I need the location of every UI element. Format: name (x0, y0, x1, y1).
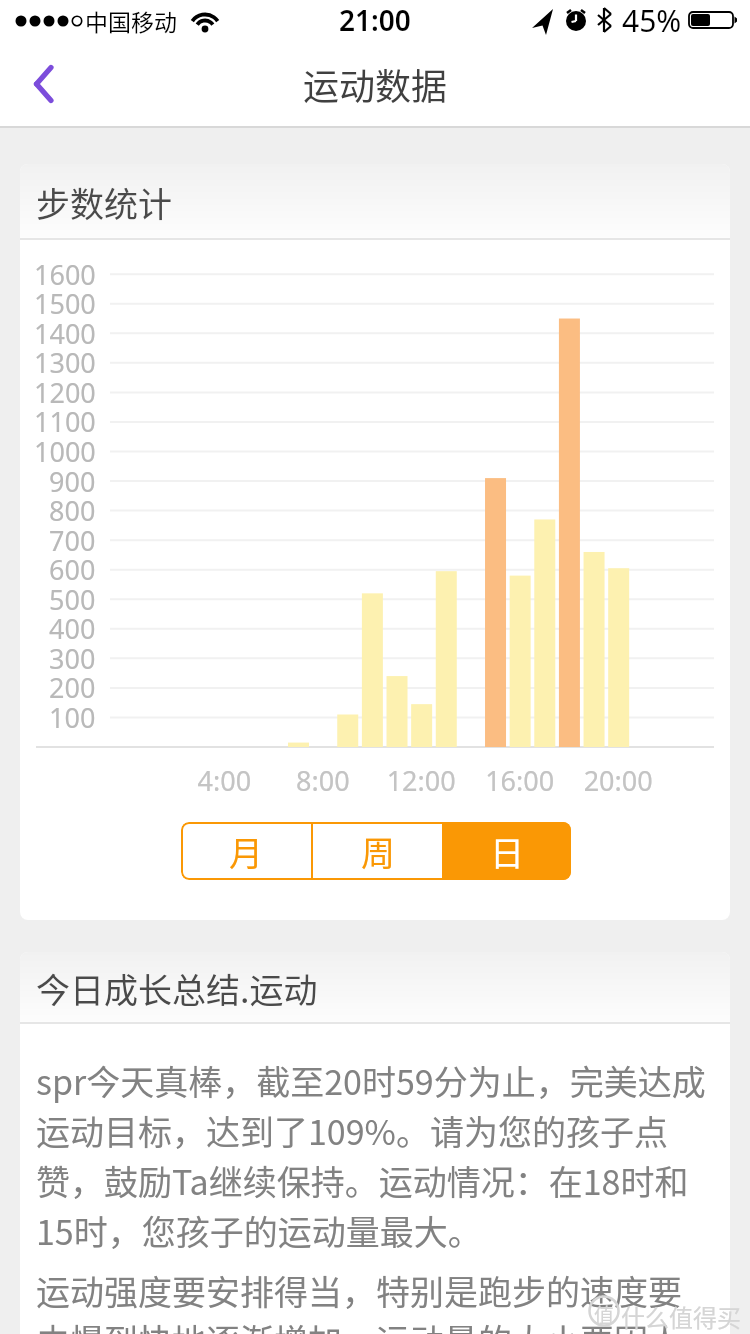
staticText: 月 (229, 827, 263, 876)
button[interactable]: 周 (313, 822, 442, 880)
staticText: 运动目标，达到了109%。请为您的孩子点 (36, 1106, 668, 1155)
staticText: 45% (622, 0, 682, 40)
staticText: 中国移动 (85, 4, 177, 37)
staticText: 什么值得买 (621, 1299, 741, 1334)
button[interactable] (20, 52, 68, 116)
staticText: 值 (594, 1300, 614, 1329)
staticText: 21:00 (339, 1, 411, 39)
staticText: 由慢到快地逐渐增加，运动量的大小要因人 (36, 1315, 682, 1334)
staticText: spr今天真棒，截至20时59分为止，完美达成 (36, 1056, 706, 1105)
staticText: 15时，您孩子的运动量最大。 (36, 1206, 482, 1255)
staticText: 日 (490, 827, 524, 876)
staticText: 赞，鼓励Ta继续保持。运动情况：在18时和 (36, 1156, 689, 1205)
staticText: 今日成长总结.运动 (36, 964, 318, 1013)
staticText: 步数统计 (36, 178, 172, 227)
button[interactable]: 月 (181, 822, 311, 880)
staticText: 运动数据 (303, 58, 448, 110)
button[interactable]: 日 (442, 822, 571, 880)
staticText: 周 (361, 827, 395, 876)
staticText: 运动强度要安排得当，特别是跑步的速度要 (36, 1266, 682, 1315)
